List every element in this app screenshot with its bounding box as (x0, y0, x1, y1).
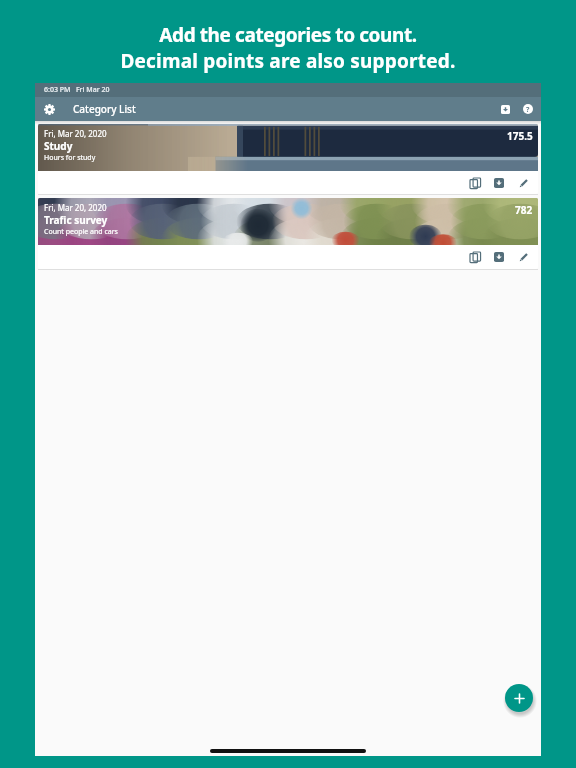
staticText: Trafic survey (44, 213, 108, 227)
staticText: Fri, Mar 20, 2020 (44, 128, 107, 139)
staticText: Study (44, 139, 73, 153)
button[interactable]: Fri, Mar 20, 2020 (38, 198, 538, 269)
button[interactable]: Fri, Mar 20, 2020 (38, 124, 538, 194)
button[interactable] (465, 173, 485, 193)
staticText: 175.5 (507, 129, 533, 143)
button[interactable] (489, 247, 509, 267)
button[interactable] (37, 97, 61, 121)
button[interactable] (513, 173, 533, 193)
staticText: ? (526, 104, 530, 114)
staticText: 6:03 PM Fri Mar 20 (44, 85, 110, 95)
button[interactable] (505, 684, 533, 712)
button[interactable] (465, 247, 485, 267)
button[interactable] (489, 173, 509, 193)
staticText: Category List (73, 102, 136, 116)
staticText: Decimal points are also supported. (120, 48, 456, 74)
staticText: Add the categories to count. (159, 22, 417, 48)
button[interactable] (513, 247, 533, 267)
button[interactable] (495, 99, 515, 119)
staticText: Count people and cars (44, 227, 118, 237)
staticText: 782 (515, 203, 533, 217)
staticText: Fri, Mar 20, 2020 (44, 202, 107, 213)
button[interactable]: ? (518, 99, 538, 119)
staticText: Hours for study (44, 153, 96, 163)
